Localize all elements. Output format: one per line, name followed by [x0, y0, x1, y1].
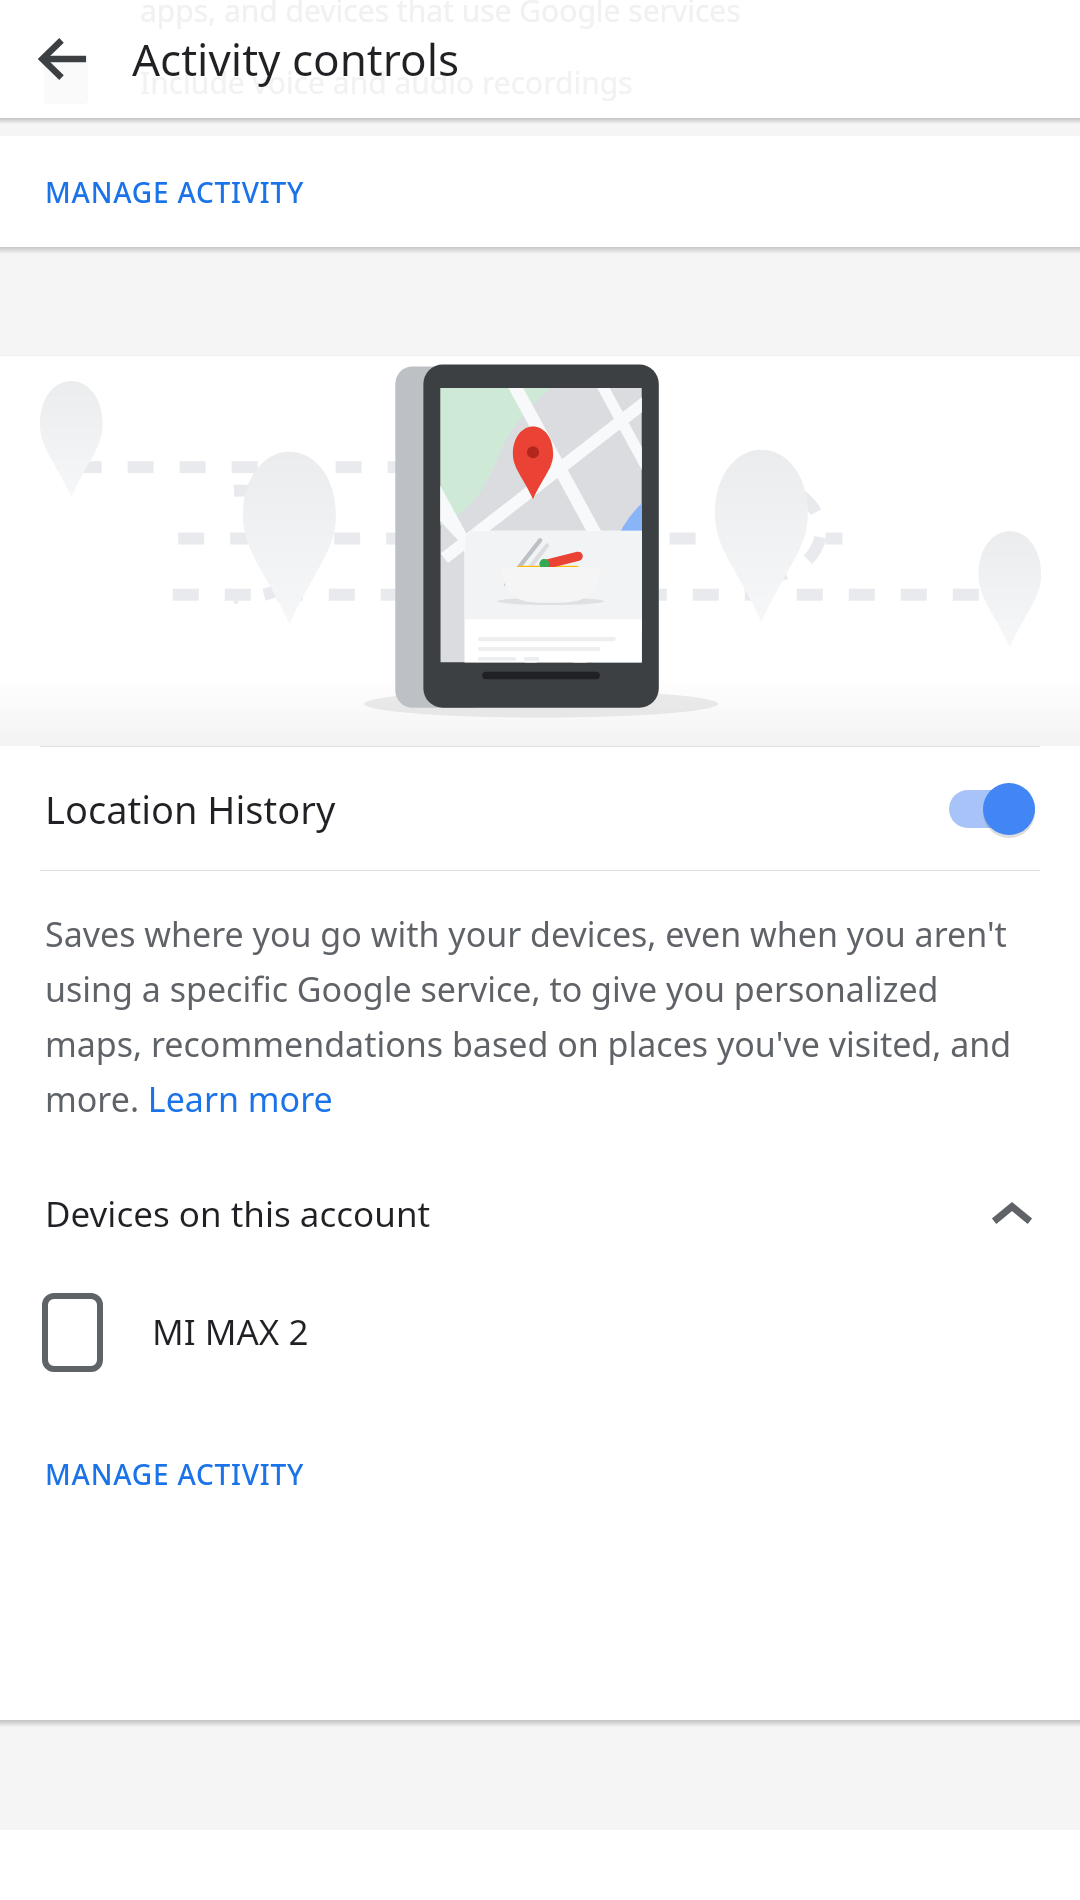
staticText: MANAGE ACTIVITY [45, 1455, 305, 1493]
staticText: Devices on this account [45, 1190, 431, 1238]
staticText: MANAGE ACTIVITY [45, 173, 305, 211]
staticText: Activity controls [132, 29, 460, 89]
button[interactable]: MANAGE ACTIVITY [0, 1424, 1080, 1524]
button[interactable]: MANAGE ACTIVITY [0, 136, 1080, 247]
staticText: Saves where you go with your devices, ev… [45, 911, 1035, 1122]
staticText: apps, and devices that use Google servic… [140, 0, 741, 31]
button[interactable]: Devices on this account [0, 1164, 1080, 1264]
button[interactable]: Back [20, 15, 108, 103]
other: Collapse devices [989, 1191, 1035, 1237]
staticText: Include voice and audio recordings [140, 62, 633, 103]
staticText: MI MAX 2 [152, 1308, 309, 1356]
button[interactable]: MI MAX 2 [0, 1280, 1080, 1384]
staticText: Location History [45, 783, 336, 835]
button[interactable]: Location History [0, 747, 1080, 870]
